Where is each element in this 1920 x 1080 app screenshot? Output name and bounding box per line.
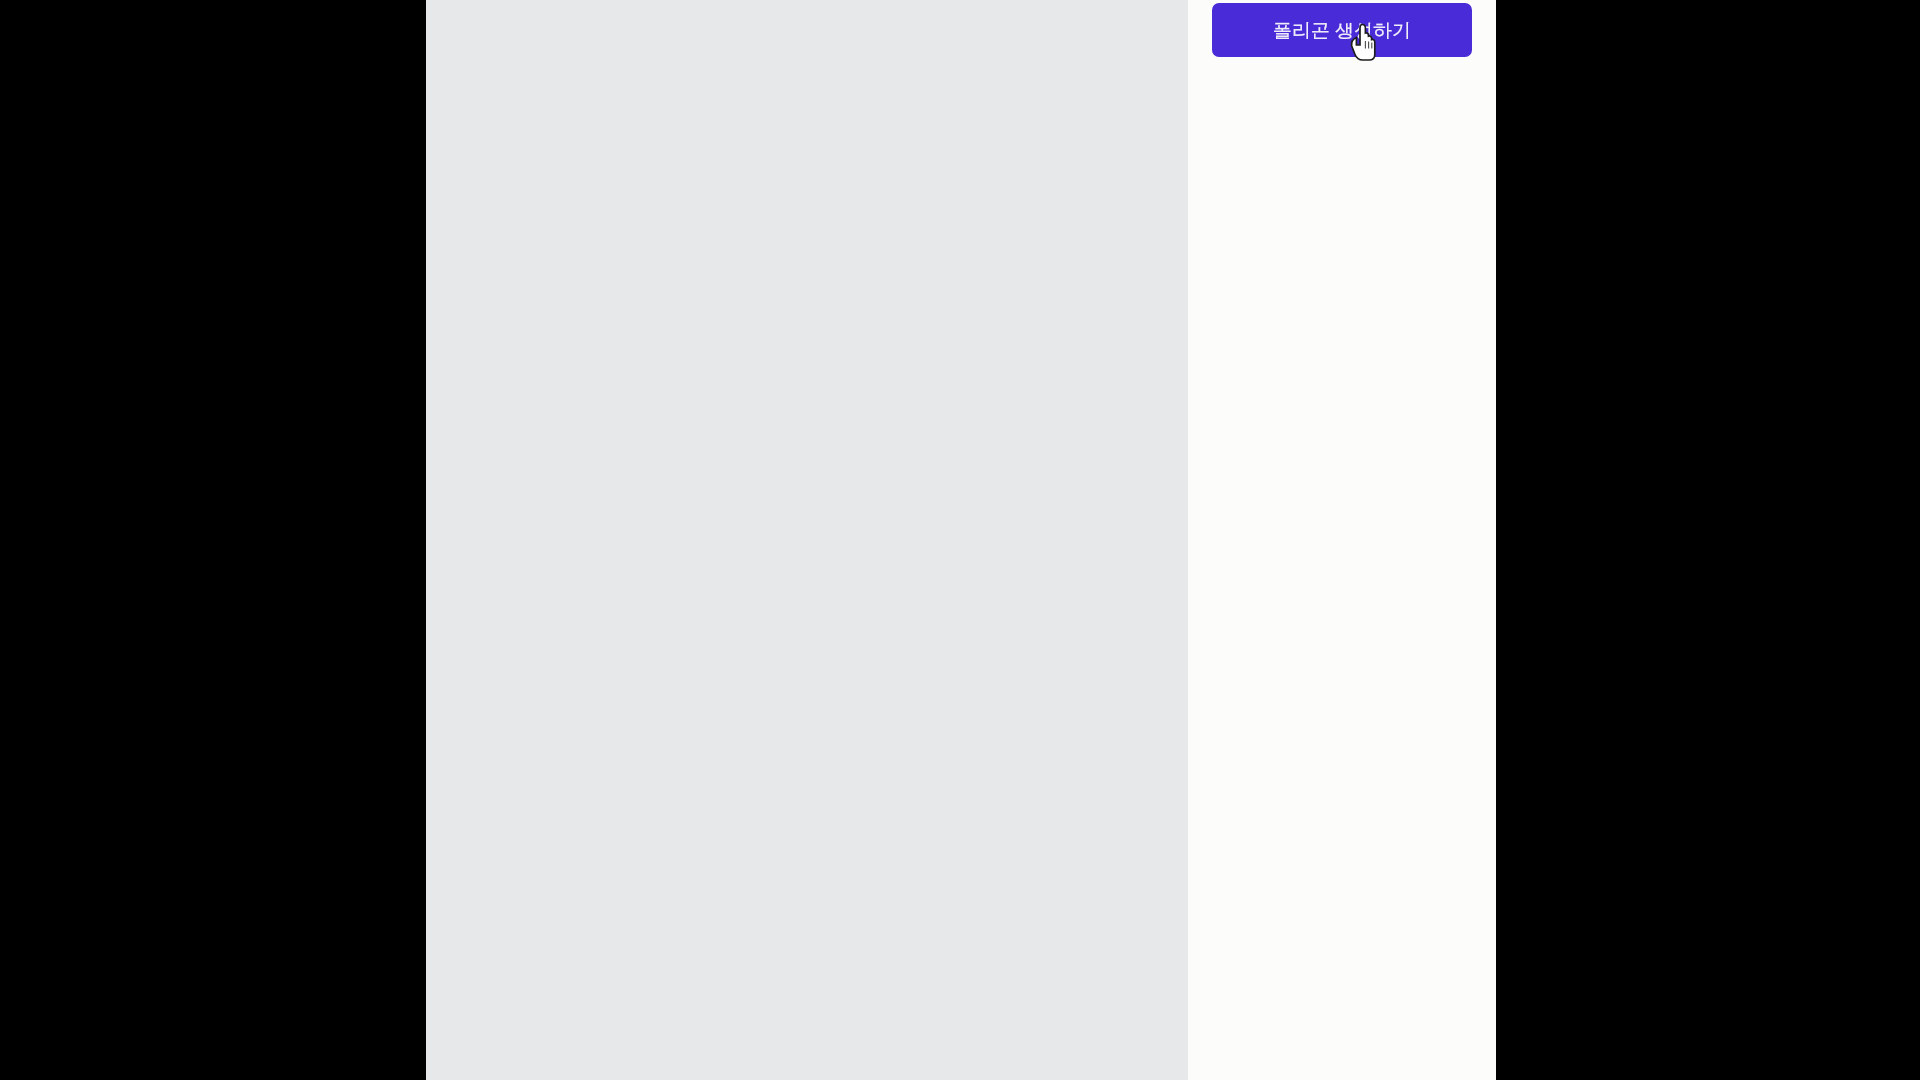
button[interactable]: 폴리곤 생성하기	[1212, 3, 1472, 57]
staticText: 폴리곤 생성하기	[1273, 17, 1411, 43]
other: Pointer cursor	[0, 0, 1920, 1080]
